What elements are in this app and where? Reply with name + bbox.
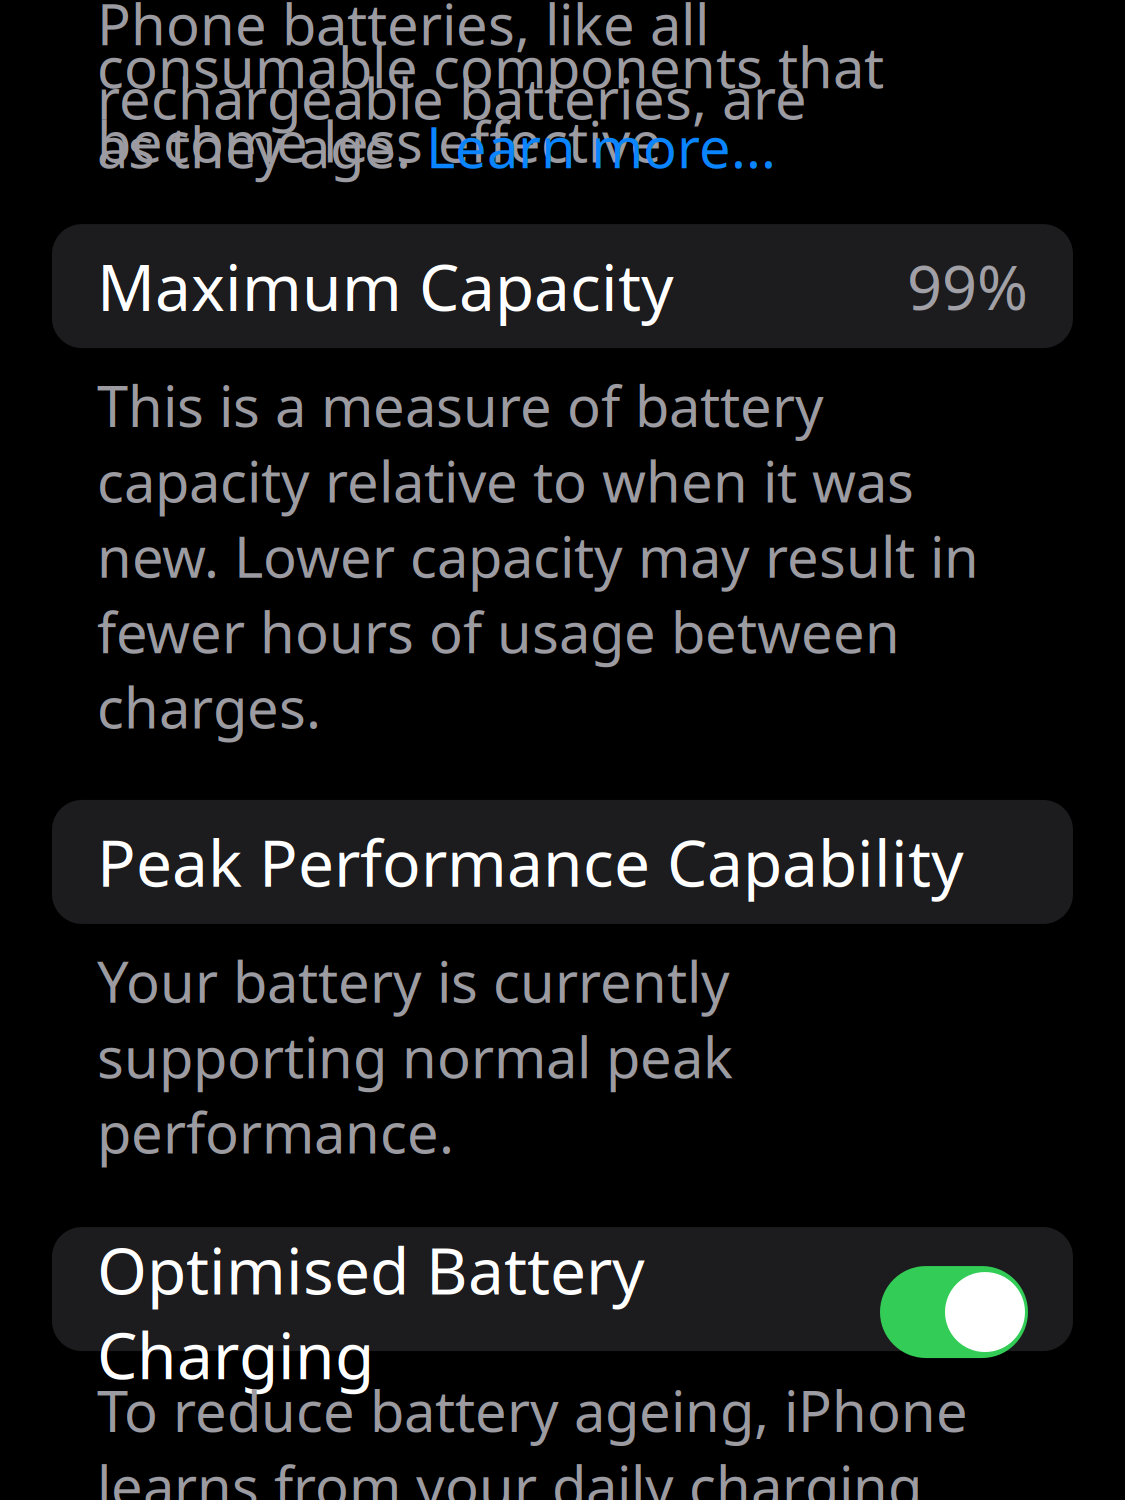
staticText: consumable components that become less e… xyxy=(97,29,884,178)
staticText: Optimised Battery Charging xyxy=(97,1227,645,1397)
staticText: Learn more... xyxy=(426,109,776,184)
button[interactable]: Peak Performance Capability xyxy=(52,800,1073,924)
staticText: To reduce battery ageing, iPhone learns … xyxy=(97,1373,977,1500)
staticText: Phone batteries, like all rechargeable b… xyxy=(97,0,807,135)
staticText: Maximum Capacity xyxy=(97,244,674,329)
staticText: This is a measure of battery capacity re… xyxy=(97,368,979,744)
staticText: as they age. xyxy=(97,109,426,184)
button[interactable]: Maximum Capacity xyxy=(52,224,1073,348)
button[interactable]: Learn more... xyxy=(426,109,776,184)
staticText: 99% xyxy=(907,245,1028,327)
staticText: Your battery is currently supporting nor… xyxy=(97,944,733,1169)
staticText: Peak Performance Capability xyxy=(97,819,964,904)
button[interactable]: Optimised Battery Charging xyxy=(52,1227,1073,1351)
